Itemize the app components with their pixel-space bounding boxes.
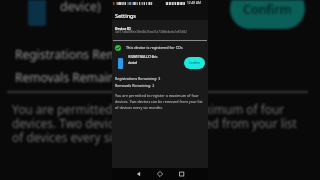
staticText: Registrations Remaining: 3 <box>115 76 161 81</box>
staticText: Removals Remaining: 2 <box>115 83 155 88</box>
button[interactable]: Recent apps <box>174 168 191 180</box>
staticText: Confirm <box>243 1 292 18</box>
staticText: Removals Remaining: 2 <box>15 69 147 85</box>
button[interactable]: Home <box>152 168 169 180</box>
staticText: Registrations Remaining: 3 <box>15 46 166 62</box>
staticText: device) <box>60 0 101 15</box>
staticText: device) <box>128 61 138 65</box>
staticText: of devices every six months. <box>115 105 163 110</box>
staticText: Settings <box>115 12 136 19</box>
button[interactable]: Back <box>130 168 147 180</box>
staticText: You are permitted to register a maximum … <box>12 101 285 117</box>
staticText: Device ID <box>115 26 131 31</box>
staticText: This device is registered for CDs <box>126 45 183 50</box>
staticText: 3af17a6b0f8ee38ef4b35ea31a73b9bdeda1e81d… <box>115 30 187 34</box>
staticText: devices. Two devices can be removed from… <box>12 115 297 131</box>
button[interactable]: Confirm <box>184 57 205 69</box>
staticText: of devices every six months. <box>12 129 169 145</box>
button[interactable]: Confirm <box>230 0 305 29</box>
staticText: devices. Two devices can be removed from… <box>115 99 203 104</box>
staticText: 12:48 AM <box>187 1 201 5</box>
staticText: You are permitted to register a maximum … <box>115 93 199 98</box>
staticText: Confirm <box>189 61 201 65</box>
staticText: HUAWEI WAS-LX1 (this <box>128 55 158 59</box>
